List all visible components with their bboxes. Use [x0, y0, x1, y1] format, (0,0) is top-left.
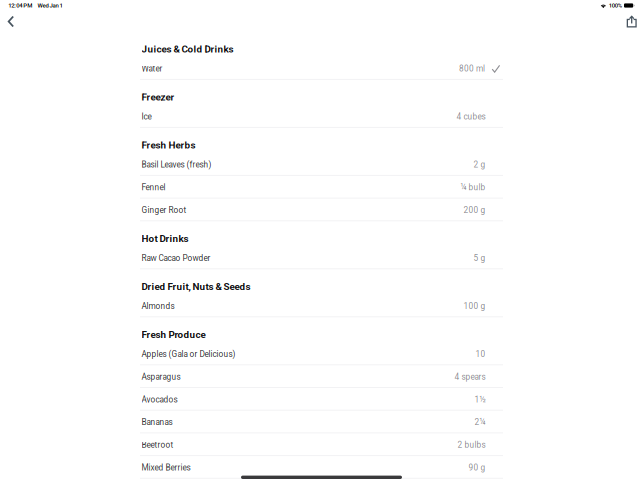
staticText: Mixed Berries — [141, 463, 190, 472]
staticText: Raw Cacao Powder — [141, 253, 210, 263]
staticText: Bananas — [141, 417, 172, 427]
staticText: 90 g — [468, 463, 485, 472]
button[interactable]: Fennel — [140, 176, 503, 198]
staticText: Basil Leaves (fresh) — [141, 160, 211, 170]
staticText: Juices & Cold Drinks — [141, 43, 233, 55]
button[interactable]: Water — [140, 57, 503, 80]
button[interactable]: Back — [0, 12, 22, 30]
staticText: 12:04 PM — [8, 2, 32, 9]
button[interactable]: Almonds — [140, 294, 503, 317]
button[interactable]: Basil Leaves (fresh) — [140, 153, 503, 176]
staticText: Asparagus — [141, 372, 180, 382]
button[interactable]: Ginger Root — [140, 198, 503, 221]
button[interactable]: Asparagus — [140, 365, 503, 388]
button[interactable]: Apples (Gala or Delicious) — [140, 342, 503, 365]
staticText: Fennel — [141, 183, 165, 192]
staticText: 200 g — [463, 205, 485, 215]
staticText: 2 bulbs — [457, 440, 485, 450]
staticText: Apples (Gala or Delicious) — [141, 349, 235, 359]
staticText: 100 g — [463, 301, 485, 311]
staticText: ¼ bulb — [460, 183, 485, 192]
staticText: 10 — [475, 349, 485, 359]
button[interactable]: Share — [621, 12, 643, 30]
staticText: Dried Fruit, Nuts & Seeds — [141, 281, 250, 292]
button[interactable]: Bananas — [140, 411, 503, 433]
staticText: 800 ml — [459, 64, 485, 74]
button[interactable]: Avocados — [140, 388, 503, 411]
staticText: 4 cubes — [456, 112, 485, 122]
button[interactable]: Raw Cacao Powder — [140, 246, 503, 269]
staticText: 2¼ — [474, 417, 485, 427]
staticText: Freezer — [141, 91, 174, 103]
staticText: 2 g — [473, 160, 485, 170]
staticText: Almonds — [141, 301, 174, 311]
staticText: 4 spears — [454, 372, 485, 382]
staticText: Fresh Produce — [141, 329, 205, 340]
staticText: Ice — [141, 112, 151, 122]
staticText: Hot Drinks — [141, 233, 188, 244]
button[interactable]: Ice — [140, 105, 503, 128]
staticText: Water — [141, 64, 162, 74]
staticText: Ginger Root — [141, 205, 186, 215]
staticText: Beetroot — [141, 440, 173, 450]
staticText: Fresh Herbs — [141, 139, 195, 151]
staticText: Avocados — [141, 395, 177, 404]
button[interactable]: Mixed Berries — [140, 456, 503, 479]
staticText: 100% — [609, 2, 622, 9]
staticText: Wed Jan 1 — [37, 2, 62, 9]
button[interactable]: Beetroot — [140, 433, 503, 456]
staticText: 5 g — [473, 253, 485, 263]
staticText: 1½ — [474, 395, 485, 404]
